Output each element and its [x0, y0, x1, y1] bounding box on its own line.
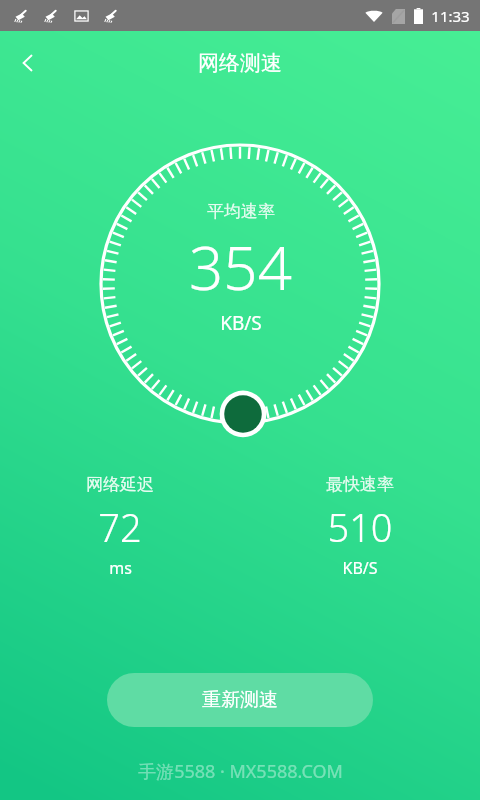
- staticText: 手游5588 · MX5588.COM: [138, 759, 343, 784]
- button[interactable]: 重新测速: [107, 673, 373, 727]
- staticText: 72: [98, 501, 142, 553]
- staticText: 354: [189, 226, 292, 308]
- staticText: 11:33: [431, 6, 470, 26]
- staticText: 网络测速: [198, 50, 282, 76]
- staticText: 510: [327, 501, 393, 553]
- button[interactable]: Back: [0, 35, 56, 91]
- staticText: 重新测速: [202, 688, 278, 712]
- staticText: KB/S: [342, 557, 378, 579]
- staticText: KB/S: [220, 310, 262, 336]
- staticText: ms: [109, 557, 132, 579]
- staticText: 平均速率: [207, 201, 275, 222]
- staticText: 最快速率: [326, 474, 394, 495]
- staticText: 网络延迟: [86, 474, 154, 495]
